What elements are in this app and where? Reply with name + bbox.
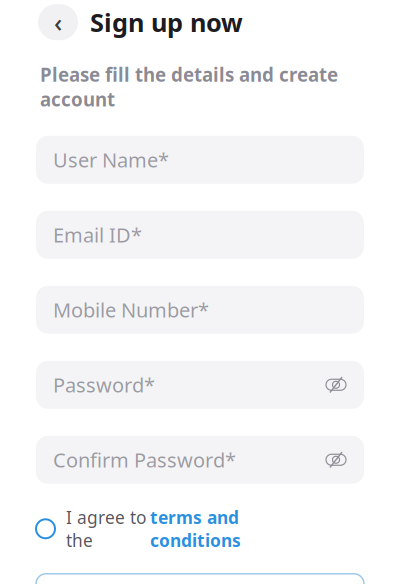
button[interactable]: I agree to the	[36, 506, 364, 552]
button[interactable]: Sign Up	[36, 574, 364, 584]
staticText: Sign up now	[90, 5, 243, 39]
staticText: Email ID*	[53, 221, 142, 248]
staticText: Password*	[53, 371, 155, 398]
staticText: ‹	[54, 5, 62, 39]
staticText: User Name*	[53, 146, 169, 173]
staticText: Please fill the details and create accou…	[40, 62, 338, 112]
staticText: Mobile Number*	[53, 296, 209, 323]
staticText: terms and conditions	[150, 506, 241, 552]
staticText: Confirm Password*	[53, 446, 236, 473]
staticText: I agree to the	[66, 506, 146, 552]
button[interactable]: Back	[38, 4, 78, 40]
